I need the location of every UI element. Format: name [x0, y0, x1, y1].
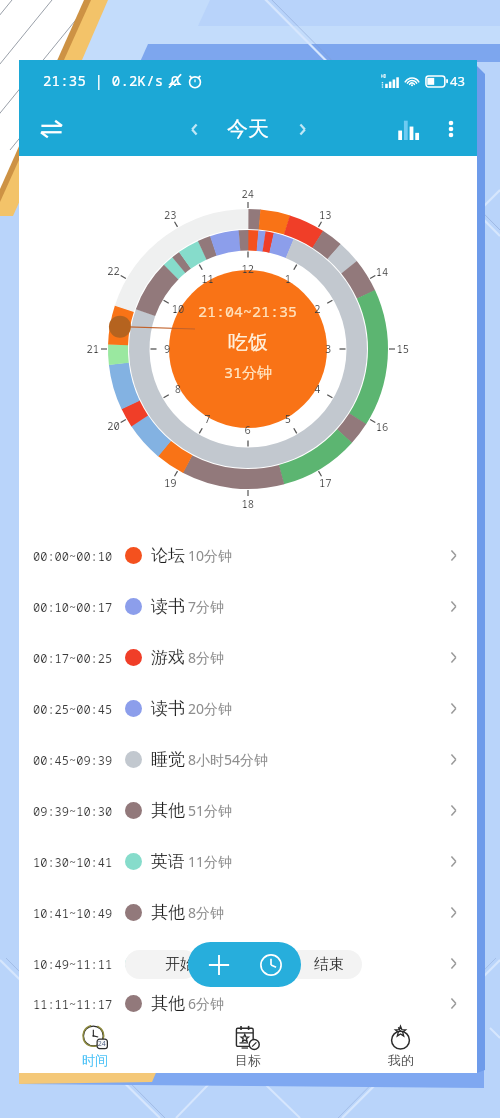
staticText: 我的 [388, 1052, 414, 1068]
staticText: 游戏 [151, 647, 185, 668]
staticText: 21:04~21:35 [198, 301, 298, 321]
staticText: 结束 [314, 955, 344, 974]
button[interactable]: 开始 [125, 950, 198, 979]
staticText: 00:45~09:39 [33, 752, 113, 768]
staticText: 00:25~00:45 [33, 701, 113, 717]
button[interactable]: 时间 [19, 1018, 171, 1073]
button[interactable]: Switch view [29, 107, 73, 151]
button[interactable]: 结束 [286, 950, 362, 979]
staticText: 吃饭 [228, 330, 268, 355]
staticText: 10:49~11:11 [33, 956, 113, 972]
button[interactable]: 10:41~10:49 [19, 887, 477, 938]
staticText: 英语 [151, 953, 185, 974]
staticText: 英语 [151, 851, 185, 872]
staticText: 8分钟 [188, 648, 225, 667]
staticText: 其他 [151, 800, 185, 821]
staticText: 31分钟 [224, 362, 273, 382]
button[interactable]: Timer [248, 942, 293, 987]
button[interactable]: Add record [196, 942, 241, 987]
staticText: 00:17~00:25 [33, 650, 113, 666]
button[interactable]: 09:39~10:30 [19, 785, 477, 836]
staticText: 睡觉 [151, 749, 185, 770]
button[interactable]: 00:10~00:17 [19, 581, 477, 632]
staticText: 09:39~10:30 [33, 803, 113, 819]
staticText: 读书 [151, 698, 185, 719]
button[interactable]: 我的 [324, 1018, 477, 1073]
staticText: 时间 [82, 1052, 108, 1068]
staticText: 00:00~00:10 [33, 548, 113, 564]
staticText: 21:35 | 0.2K/s [43, 71, 164, 90]
button[interactable]: 11:11~11:17 [19, 989, 477, 1018]
staticText: 其他 [151, 993, 185, 1014]
staticText: 论坛 [151, 545, 185, 566]
button[interactable]: Next day [283, 110, 321, 148]
staticText: 其他 [151, 902, 185, 923]
staticText: 43 [450, 72, 465, 90]
staticText: 22分钟 [188, 954, 233, 973]
button[interactable]: 00:17~00:25 [19, 632, 477, 683]
button[interactable]: 今天 [227, 116, 269, 142]
staticText: 8分钟 [188, 903, 225, 922]
staticText: 20分钟 [188, 699, 233, 718]
staticText: 读书 [151, 596, 185, 617]
staticText: 51分钟 [188, 801, 233, 820]
button[interactable]: More options [429, 107, 473, 151]
button[interactable]: Previous day [175, 110, 213, 148]
staticText: 11分钟 [188, 852, 233, 871]
button[interactable]: 00:25~00:45 [19, 683, 477, 734]
staticText: 00:10~00:17 [33, 599, 113, 615]
button[interactable]: 00:00~00:10 [19, 530, 477, 581]
staticText: 10:41~10:49 [33, 905, 113, 921]
staticText: 开始 [165, 955, 195, 974]
staticText: 10:30~10:41 [33, 854, 113, 870]
staticText: 10分钟 [188, 546, 233, 565]
button[interactable]: 目标 [171, 1018, 324, 1073]
button[interactable]: 10:49~11:11 [19, 938, 477, 989]
button[interactable]: 10:30~10:41 [19, 836, 477, 887]
staticText: 目标 [235, 1052, 261, 1068]
staticText: 6分钟 [188, 994, 225, 1013]
staticText: 8小时54分钟 [188, 750, 269, 769]
staticText: 11:11~11:17 [33, 996, 113, 1012]
staticText: 7分钟 [188, 597, 225, 616]
button[interactable]: Statistics [385, 107, 429, 151]
button[interactable]: 00:45~09:39 [19, 734, 477, 785]
